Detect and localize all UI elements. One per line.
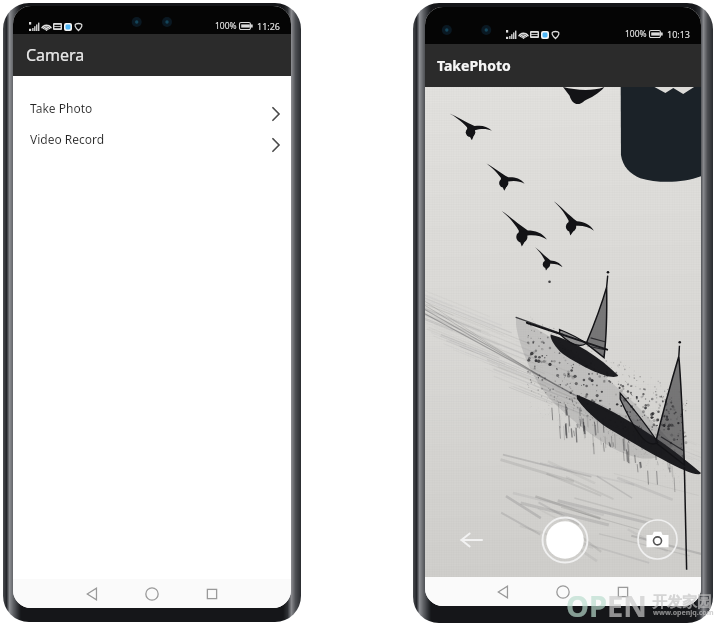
button[interactable]: Take Photo <box>13 92 291 123</box>
staticText: Take Photo <box>30 100 93 116</box>
staticText: www.openjq.com <box>653 608 714 618</box>
button[interactable]: Home <box>140 582 164 606</box>
button[interactable]: Shutter <box>541 516 589 564</box>
button[interactable]: Recents <box>200 582 224 606</box>
staticText: 10:13 <box>667 28 691 40</box>
button[interactable]: Back <box>455 524 487 556</box>
staticText: OP <box>566 586 607 625</box>
staticText: 11:26 <box>257 20 281 32</box>
button[interactable]: Switch camera <box>637 519 678 560</box>
button[interactable]: Back <box>491 580 515 604</box>
button[interactable]: Home <box>551 580 575 604</box>
staticText: 100% <box>215 20 237 32</box>
staticText: 100% <box>625 28 647 40</box>
staticText: EN <box>607 586 647 625</box>
staticText: TakePhoto <box>437 56 511 75</box>
button[interactable]: Video Record <box>13 123 291 154</box>
staticText: Video Record <box>30 131 105 147</box>
button[interactable]: Back <box>80 582 104 606</box>
button[interactable]: Recents <box>611 580 635 604</box>
staticText: Camera <box>26 44 85 66</box>
staticText: 开发家园 <box>652 593 712 612</box>
